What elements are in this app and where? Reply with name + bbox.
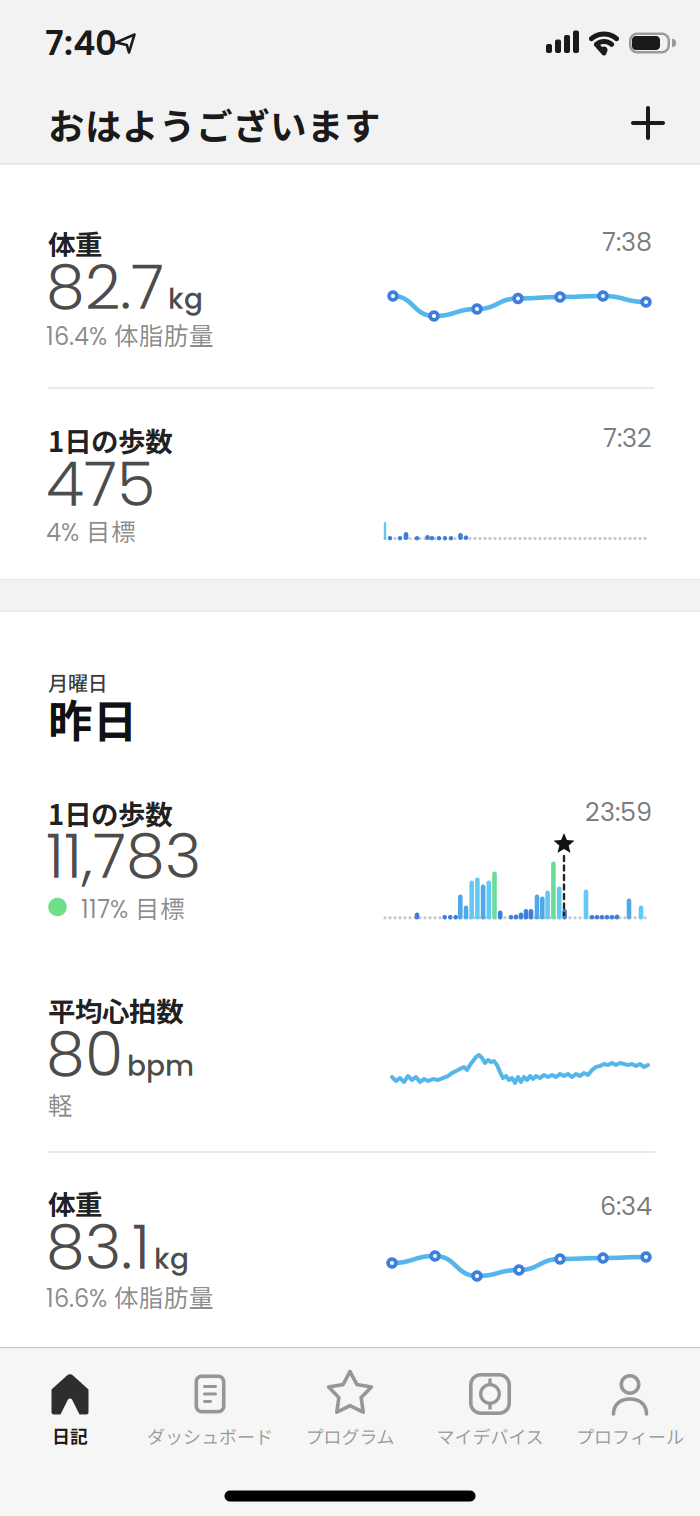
staticText: 1日の歩数 (48, 793, 172, 833)
staticText: 23:59 (585, 794, 652, 830)
button[interactable]: 1日の歩数 (0, 765, 700, 950)
staticText: 平均心拍数 (48, 990, 183, 1030)
button[interactable]: マイデバイス (420, 1363, 560, 1459)
staticText: 7:38 (602, 224, 652, 260)
staticText: 6:34 (600, 1188, 652, 1224)
staticText: プログラム (305, 1423, 394, 1449)
staticText: 日記 (52, 1423, 88, 1449)
staticText: 軽 (48, 1086, 73, 1122)
staticText: kg (154, 1239, 189, 1278)
staticText: 80 (46, 1011, 123, 1097)
staticText: おはようございます (48, 97, 381, 150)
staticText: 目標 (86, 513, 136, 548)
staticText: 体重 (48, 1183, 102, 1223)
staticText: 82.7 (46, 244, 164, 330)
staticText: 7:40 (45, 19, 117, 67)
staticText: 4% (46, 516, 79, 549)
staticText: kg (168, 279, 203, 318)
staticText: 16.6% (46, 1282, 107, 1315)
button[interactable]: 体重 (0, 165, 700, 387)
staticText: 昨日 (48, 686, 138, 750)
staticText: bpm (127, 1046, 194, 1085)
button[interactable]: 体重 (0, 1153, 700, 1346)
staticText: 体脂肪量 (114, 317, 214, 352)
button[interactable]: 1日の歩数 (0, 389, 700, 579)
staticText: ダッシュボード (147, 1423, 273, 1449)
staticText: 16.4% (46, 320, 107, 353)
button[interactable]: プログラム (280, 1363, 420, 1459)
staticText: 475 (46, 441, 155, 527)
button[interactable]: Add (0, 0, 700, 1516)
staticText: マイデバイス (436, 1423, 543, 1449)
button[interactable]: 平均心拍数 (0, 952, 700, 1152)
staticText: 11,783 (46, 813, 201, 899)
staticText: 1日の歩数 (48, 420, 172, 460)
staticText: 7:32 (603, 420, 652, 456)
staticText: 83.1 (46, 1204, 150, 1290)
staticText: 体脂肪量 (114, 1279, 214, 1314)
staticText: 117% (81, 893, 128, 926)
staticText: 月曜日 (48, 667, 108, 696)
staticText: プロフィール (576, 1423, 684, 1449)
staticText: 体重 (48, 223, 102, 263)
staticText: 目標 (135, 890, 185, 925)
button[interactable]: 日記 (0, 1363, 140, 1459)
button[interactable]: ダッシュボード (140, 1363, 280, 1459)
button[interactable]: プロフィール (560, 1363, 700, 1459)
